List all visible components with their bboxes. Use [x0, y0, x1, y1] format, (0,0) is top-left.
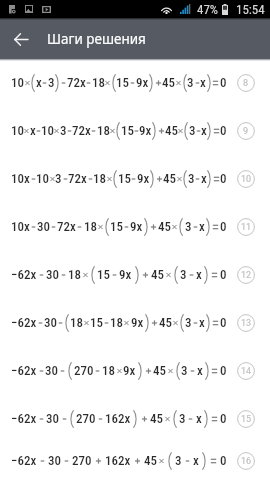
- button[interactable]: −62x: [0, 299, 270, 347]
- staticText: 10: [41, 123, 54, 138]
- other: Wi-Fi: [160, 4, 173, 15]
- staticText: 10: [241, 174, 252, 185]
- button[interactable]: 10: [0, 107, 270, 155]
- staticText: 45: [163, 171, 176, 186]
- staticText: 15: [118, 171, 131, 186]
- staticText: 45: [150, 411, 163, 426]
- staticText: 0: [220, 267, 227, 282]
- button[interactable]: 10x: [0, 203, 270, 251]
- staticText: 72x: [68, 171, 87, 186]
- staticText: 0: [220, 219, 227, 234]
- staticText: x: [200, 75, 206, 90]
- staticText: x: [197, 363, 203, 378]
- staticText: 0: [220, 75, 227, 90]
- staticText: x: [201, 123, 207, 138]
- staticText: x: [201, 171, 207, 186]
- staticText: x: [30, 123, 36, 138]
- button[interactable]: −62x: [0, 251, 270, 299]
- staticText: 162x: [105, 453, 131, 468]
- button[interactable]: 10x: [0, 155, 270, 203]
- staticText: 162x: [105, 411, 131, 426]
- staticText: 15: [241, 414, 252, 425]
- staticText: 16: [241, 456, 252, 467]
- other: YouTube: [42, 6, 51, 13]
- staticText: 72x: [72, 123, 91, 138]
- staticText: 3: [60, 123, 67, 138]
- staticText: −62x: [11, 453, 37, 468]
- staticText: 8: [243, 78, 249, 89]
- button[interactable]: 10: [0, 59, 270, 107]
- staticText: 15: [90, 315, 103, 330]
- staticText: 11: [241, 222, 252, 233]
- staticText: x: [199, 219, 205, 234]
- staticText: 3: [185, 219, 192, 234]
- staticText: 10: [11, 75, 24, 90]
- staticText: 15: [110, 219, 123, 234]
- staticText: 15: [97, 267, 110, 282]
- staticText: 72x: [67, 75, 86, 90]
- staticText: 10: [11, 123, 24, 138]
- staticText: 45: [159, 315, 172, 330]
- staticText: 10x: [11, 219, 30, 234]
- staticText: 3: [48, 75, 55, 90]
- other: Screenshot: [25, 5, 33, 13]
- staticText: −62x: [11, 267, 37, 282]
- staticText: 15: [116, 75, 129, 90]
- staticText: 0: [220, 363, 227, 378]
- staticText: 9x: [136, 75, 149, 90]
- staticText: 270: [72, 453, 92, 468]
- staticText: 9x: [137, 171, 150, 186]
- staticText: 270: [76, 411, 96, 426]
- staticText: 30: [46, 267, 59, 282]
- staticText: 3: [188, 171, 195, 186]
- staticText: 18: [102, 363, 115, 378]
- other: Battery: [222, 4, 228, 15]
- staticText: 10: [36, 171, 49, 186]
- staticText: 30: [48, 453, 61, 468]
- staticText: 18: [97, 123, 110, 138]
- staticText: 14: [241, 366, 252, 377]
- staticText: 30: [46, 411, 59, 426]
- staticText: 45: [158, 219, 171, 234]
- button[interactable]: Back: [8, 26, 34, 52]
- button[interactable]: −62x: [0, 443, 270, 478]
- staticText: −62x: [11, 411, 37, 426]
- staticText: x: [196, 411, 202, 426]
- staticText: 0: [220, 411, 227, 426]
- staticText: 18: [70, 315, 83, 330]
- staticText: 12: [241, 270, 252, 281]
- staticText: 18: [84, 219, 97, 234]
- button[interactable]: −62x: [0, 395, 270, 443]
- staticText: Шаги решения: [47, 30, 146, 48]
- other: Package installer: [9, 5, 16, 14]
- staticText: 45: [153, 363, 166, 378]
- staticText: 3: [181, 363, 188, 378]
- staticText: x: [196, 267, 202, 282]
- staticText: 45: [151, 267, 164, 282]
- staticText: 30: [44, 315, 57, 330]
- staticText: 72x: [57, 219, 76, 234]
- staticText: 13: [241, 318, 252, 329]
- staticText: 3: [55, 171, 62, 186]
- staticText: 18: [110, 315, 123, 330]
- staticText: 3: [189, 123, 196, 138]
- staticText: 47%: [197, 2, 219, 17]
- staticText: 3: [187, 75, 194, 90]
- button[interactable]: −62x: [0, 347, 270, 395]
- staticText: 15:54: [236, 2, 265, 17]
- staticText: 3: [180, 267, 187, 282]
- staticText: 9x: [123, 363, 136, 378]
- staticText: 270: [74, 363, 94, 378]
- other: Mobile signal: [180, 4, 191, 14]
- staticText: 9x: [131, 315, 144, 330]
- staticText: 0: [220, 315, 227, 330]
- staticText: 0: [220, 123, 227, 138]
- staticText: 45: [144, 453, 157, 468]
- staticText: 18: [92, 75, 105, 90]
- staticText: 9: [243, 126, 249, 137]
- staticText: 45: [162, 75, 175, 90]
- staticText: x: [36, 75, 42, 90]
- staticText: −62x: [11, 363, 37, 378]
- staticText: 18: [68, 267, 81, 282]
- staticText: 3: [175, 453, 182, 468]
